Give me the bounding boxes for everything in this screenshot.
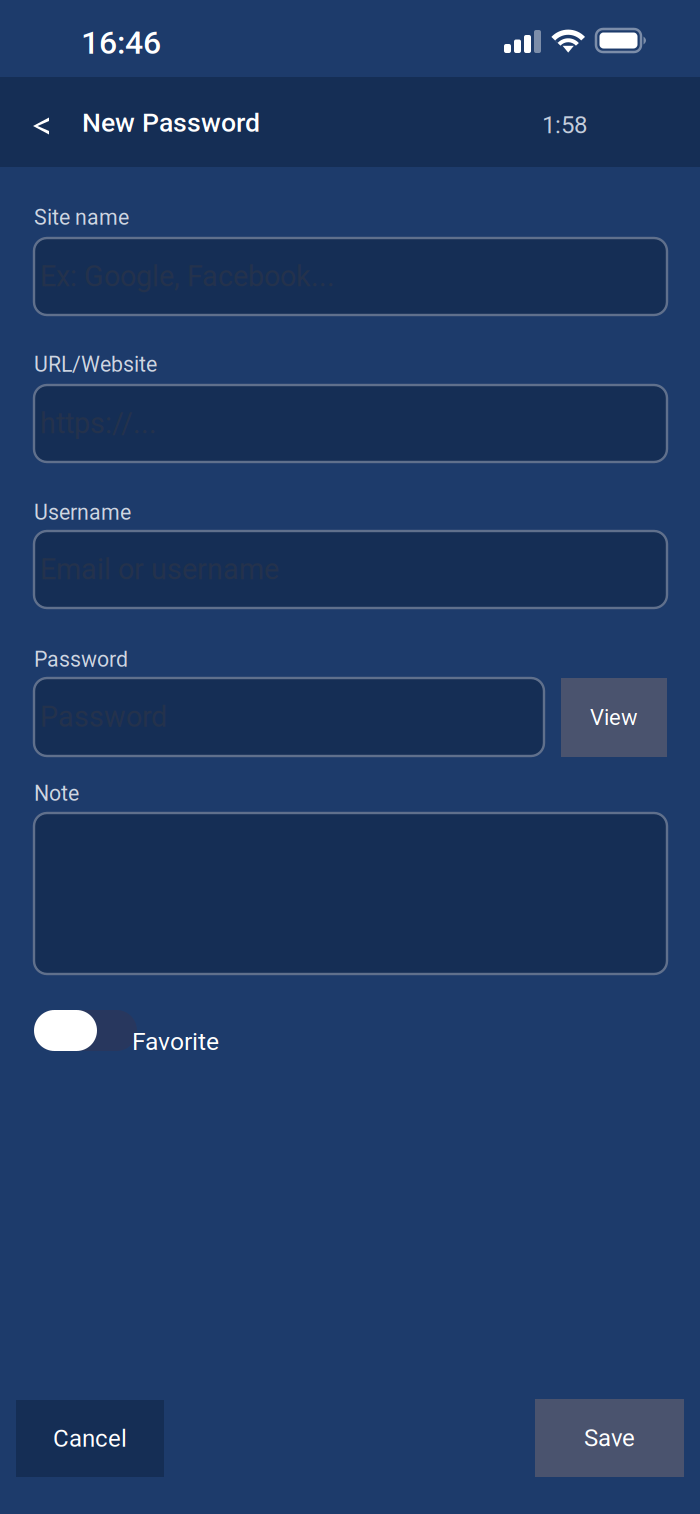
staticText: Password bbox=[40, 700, 167, 734]
staticText: Cancel bbox=[53, 1424, 127, 1452]
button[interactable]: Site name bbox=[34, 238, 667, 315]
staticText: Ex: Google, Facebook... bbox=[40, 260, 335, 293]
staticText: New Password bbox=[82, 107, 260, 138]
button[interactable]: Username bbox=[34, 531, 667, 608]
staticText: Save bbox=[584, 1424, 635, 1452]
button[interactable]: URL/Website bbox=[34, 385, 667, 462]
button[interactable]: Cancel bbox=[16, 1400, 164, 1477]
button[interactable]: Password bbox=[34, 678, 544, 756]
button[interactable]: View bbox=[561, 678, 667, 757]
staticText: https://... bbox=[40, 407, 157, 440]
staticText: Note bbox=[34, 781, 79, 806]
button[interactable]: Note bbox=[34, 813, 667, 974]
staticText: 1:58 bbox=[542, 111, 587, 139]
staticText: Email or username bbox=[40, 553, 279, 586]
staticText: URL/Website bbox=[34, 352, 157, 377]
staticText: 16:46 bbox=[81, 24, 161, 61]
staticText: Favorite bbox=[132, 1027, 219, 1056]
button[interactable]: Back bbox=[18, 100, 64, 152]
button[interactable]: Save bbox=[535, 1399, 684, 1477]
staticText: Site name bbox=[34, 205, 129, 230]
staticText: Username bbox=[34, 500, 131, 525]
staticText: View bbox=[590, 705, 638, 730]
button[interactable]: Favorite bbox=[34, 1010, 220, 1051]
staticText: Password bbox=[34, 647, 128, 672]
